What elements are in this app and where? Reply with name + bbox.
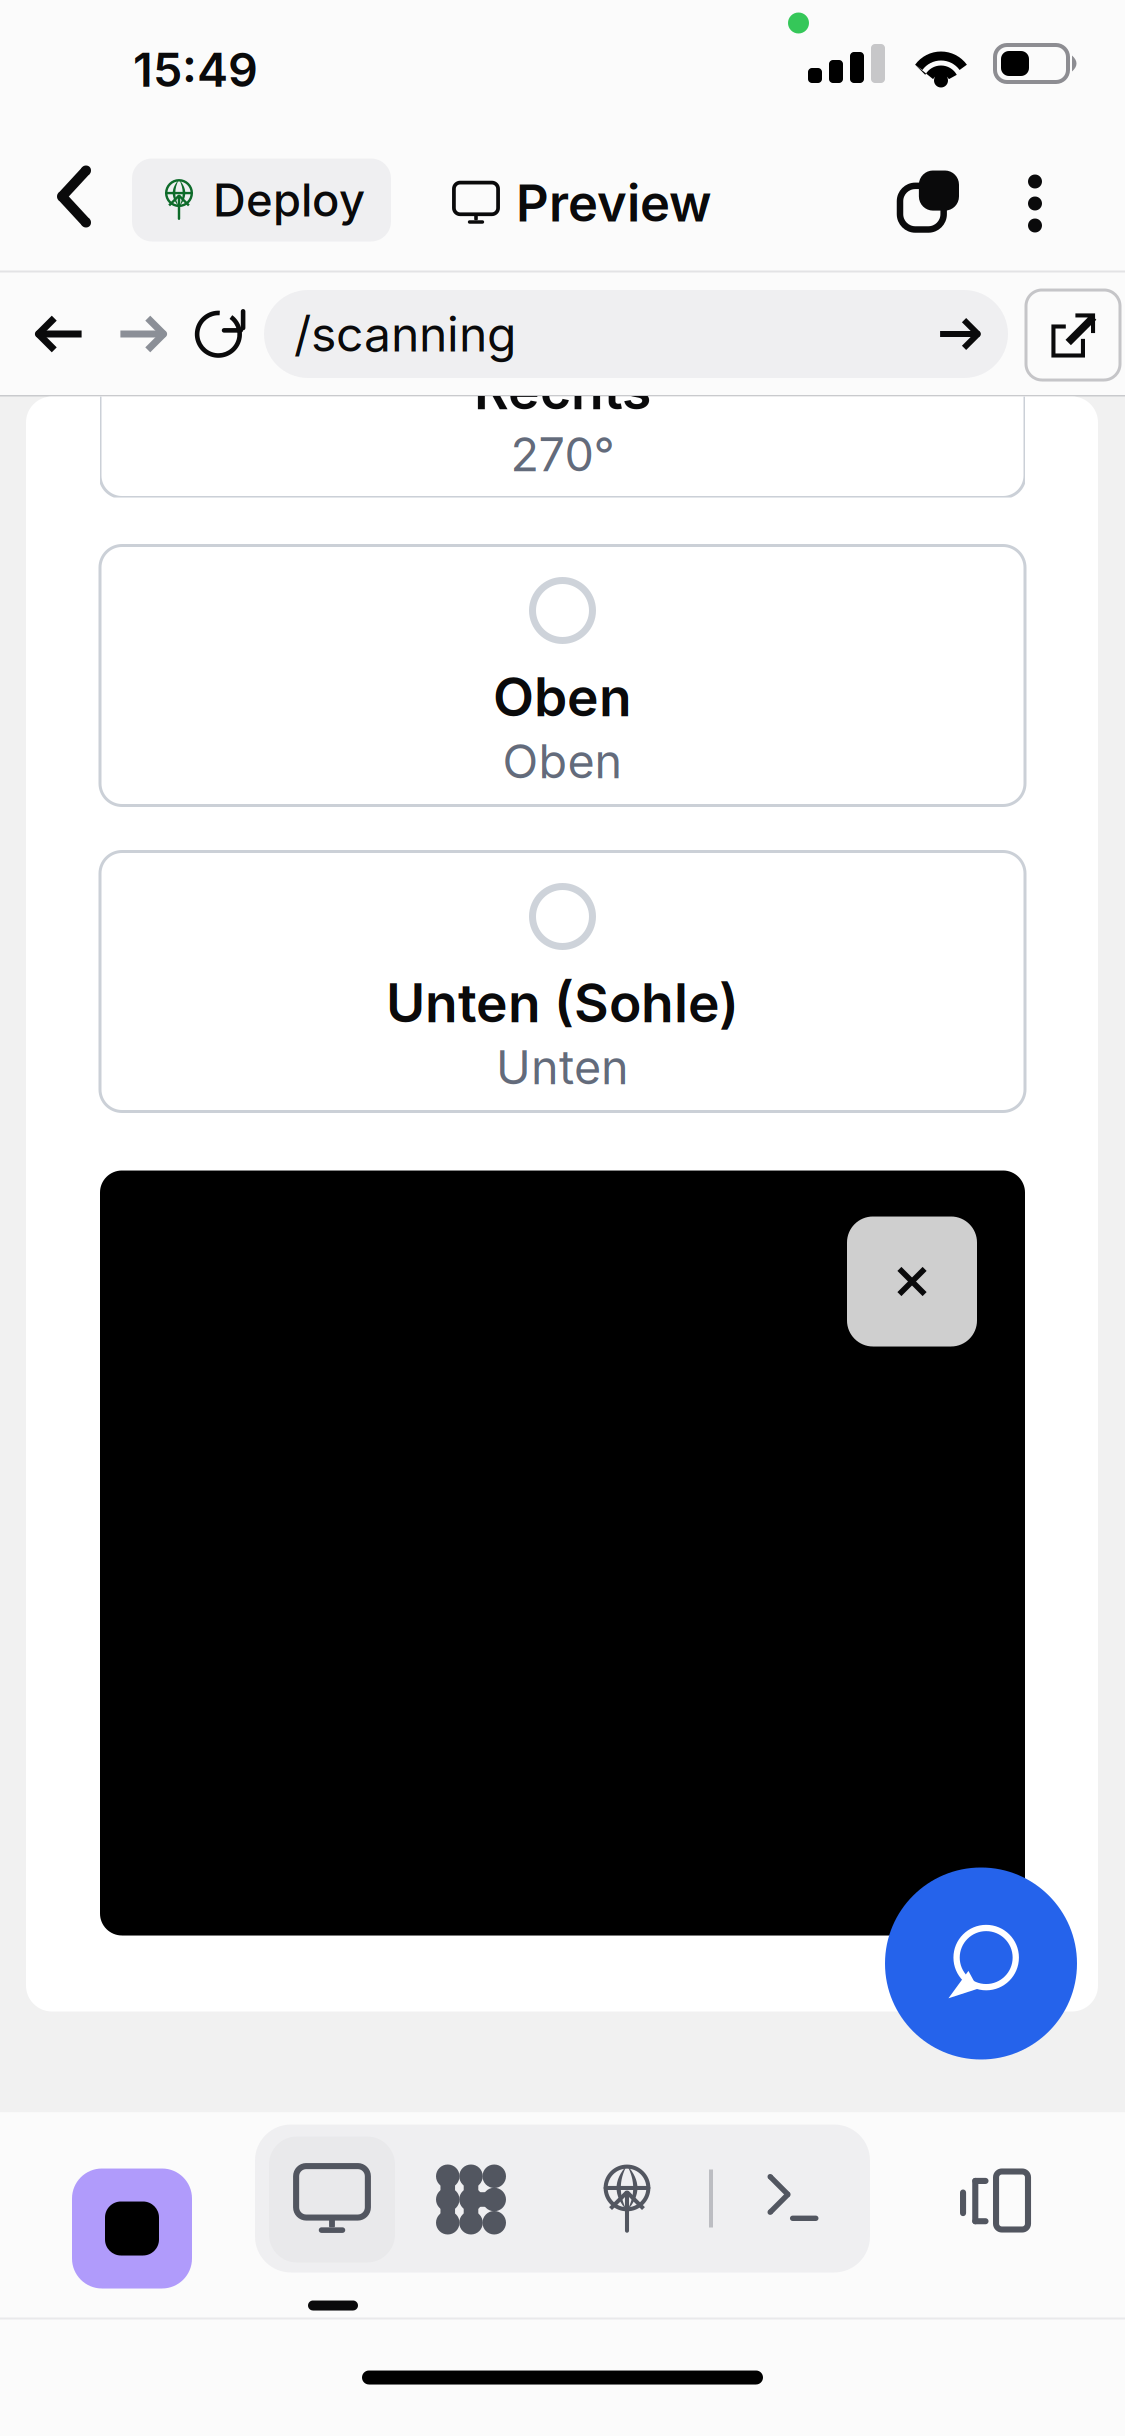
button[interactable]: Duplicate	[876, 146, 983, 253]
button[interactable]: Terminal	[733, 2136, 853, 2262]
staticText: Rechts	[474, 357, 651, 422]
button[interactable]: Reload	[176, 284, 272, 380]
button[interactable]: Close camera	[847, 1216, 977, 1346]
button[interactable]: Back	[12, 286, 108, 382]
button[interactable]: Forward	[94, 286, 190, 382]
button[interactable]: Open externally	[1026, 290, 1120, 380]
button[interactable]: App	[72, 2168, 192, 2288]
staticText: Oben	[493, 664, 632, 729]
staticText: Unten (Sohle)	[386, 970, 739, 1035]
button[interactable]: Back	[42, 138, 128, 254]
staticText: Deploy	[213, 173, 365, 227]
button[interactable]: Chat	[885, 1867, 1077, 2059]
button[interactable]: Deploy	[132, 158, 391, 241]
staticText: Preview	[516, 172, 712, 234]
button[interactable]: Preview	[269, 2136, 395, 2262]
staticText: /scanning	[294, 305, 516, 363]
button[interactable]: /scanning	[264, 290, 1008, 378]
button[interactable]: Layout	[934, 2140, 1054, 2260]
button[interactable]: More options	[994, 148, 1076, 258]
staticText: Oben	[502, 733, 622, 789]
staticText: Unten	[496, 1039, 629, 1095]
button[interactable]: Components	[411, 2136, 531, 2262]
button[interactable]: Deploy	[567, 2136, 687, 2262]
staticText: 270°	[510, 426, 614, 482]
staticText: 15:49	[133, 41, 258, 98]
